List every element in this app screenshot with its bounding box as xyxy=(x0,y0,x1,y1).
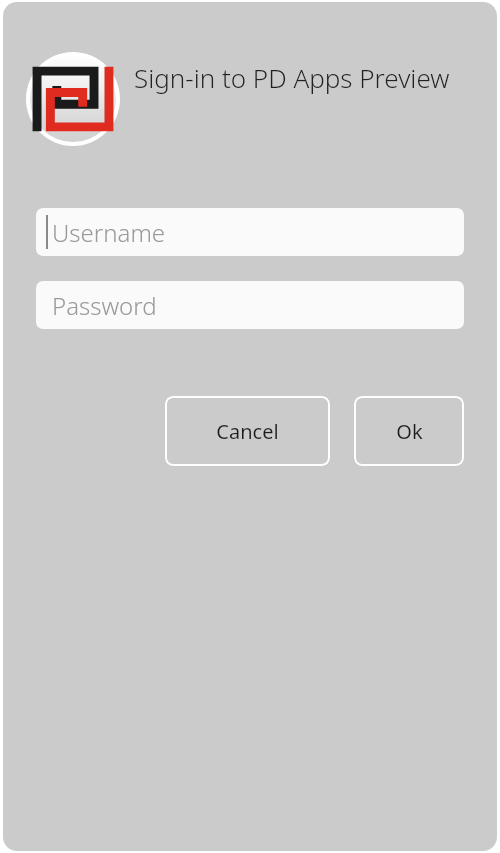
staticText: Password xyxy=(52,289,157,322)
staticText: Sign-in to PD Apps Preview xyxy=(134,60,450,95)
other: PD Apps logo xyxy=(26,52,120,146)
button[interactable]: Username xyxy=(36,208,464,256)
staticText: Cancel xyxy=(216,418,279,445)
staticText: Username xyxy=(52,216,166,249)
button[interactable]: Ok xyxy=(354,396,464,466)
staticText: Ok xyxy=(396,418,423,445)
button[interactable]: Cancel xyxy=(165,396,330,466)
button[interactable]: Password xyxy=(36,281,464,329)
